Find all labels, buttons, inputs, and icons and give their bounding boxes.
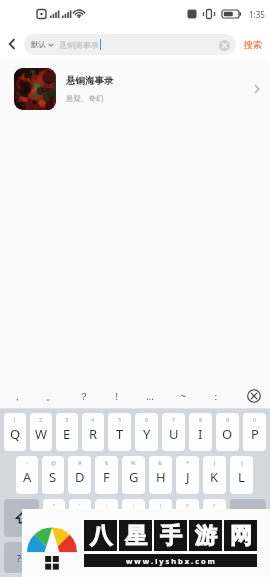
button[interactable]: 9 (216, 413, 239, 451)
staticText: " (53, 502, 56, 509)
staticText: 。 (46, 390, 56, 403)
button[interactable]: ~ (166, 383, 199, 409)
staticText: 。 (202, 552, 211, 563)
button[interactable]: " (43, 499, 65, 537)
button[interactable]: ， (43, 542, 66, 573)
staticText: 默认 (31, 40, 46, 49)
button[interactable]: 。 (195, 542, 218, 573)
staticText: J (186, 468, 190, 486)
staticText: 9 (226, 416, 230, 423)
staticText: M (209, 511, 221, 529)
staticText: @ (51, 459, 56, 466)
staticText: ， (12, 390, 22, 403)
staticText: G (129, 468, 139, 486)
staticText: - (26, 459, 28, 466)
button[interactable]: Key (230, 499, 266, 537)
staticText: % (131, 459, 136, 466)
staticText: I (198, 425, 203, 443)
button[interactable]: ： (199, 383, 232, 409)
staticText: 搜索 (236, 553, 252, 563)
button[interactable]: ？ (67, 383, 100, 409)
button[interactable]: 默认 (24, 34, 236, 55)
button[interactable]: 3 (56, 413, 78, 451)
staticText: T (116, 425, 124, 443)
staticText: ！ (112, 390, 122, 403)
staticText: C (102, 511, 111, 529)
staticText: E (63, 425, 71, 443)
staticText: A (23, 468, 32, 486)
staticText: ?1 (17, 552, 27, 564)
button[interactable]: ' (69, 499, 91, 537)
staticText: 4 (91, 416, 95, 423)
staticText: F (103, 468, 110, 486)
button[interactable]: ; (122, 499, 145, 537)
button[interactable] (105, 542, 191, 573)
staticText: Q (10, 425, 21, 443)
button[interactable]: 。 (34, 383, 67, 409)
staticText: 八 (90, 522, 112, 550)
button[interactable]: % (122, 456, 145, 494)
button[interactable]: 2 (30, 413, 52, 451)
button[interactable]: Search (222, 544, 266, 571)
button[interactable]: @ (42, 456, 64, 494)
button[interactable]: $ (95, 456, 118, 494)
staticText: 8 (199, 416, 203, 423)
staticText: U (169, 425, 179, 443)
staticText: / (213, 502, 216, 509)
staticText: 悬铜海事录 (66, 75, 114, 87)
staticText: P (251, 425, 259, 443)
staticText: w w w . l y s h b x . c o m (126, 556, 215, 566)
button[interactable]: * (176, 456, 199, 494)
button[interactable]: ) (230, 456, 253, 494)
staticText: 3 (65, 416, 69, 423)
button[interactable]: ( (203, 456, 226, 494)
staticText: 网 (230, 522, 252, 550)
staticText: * (186, 459, 190, 466)
button[interactable]: - (16, 456, 38, 494)
staticText: 5 (118, 416, 122, 423)
button[interactable]: 搜索 (236, 28, 270, 60)
staticText: ？ (79, 390, 89, 403)
staticText: ( (214, 459, 216, 466)
staticText: ! (160, 502, 162, 509)
staticText: D (75, 468, 85, 486)
staticText: 1:35 (249, 9, 265, 20)
button[interactable]: 5 (108, 413, 131, 451)
staticText: 星 (125, 522, 147, 550)
staticText: ) (241, 459, 243, 466)
staticText: : (106, 502, 108, 509)
button[interactable]: ! (149, 499, 172, 537)
staticText: B (156, 511, 165, 529)
button[interactable]: 1 (4, 413, 26, 451)
button[interactable]: … (133, 383, 166, 409)
staticText: 7 (172, 416, 176, 423)
button[interactable]: ， (0, 383, 34, 409)
button[interactable]: & (149, 456, 172, 494)
button[interactable]: Back (0, 28, 24, 60)
button[interactable]: / (203, 499, 226, 537)
staticText: Z (50, 511, 58, 529)
button[interactable]: 6 (135, 413, 158, 451)
staticText: 1 (13, 416, 17, 423)
button[interactable]: 8 (189, 413, 212, 451)
button[interactable]: Hide keyboard (241, 383, 267, 409)
button[interactable]: 中/英 (70, 542, 101, 573)
button[interactable]: ！ (100, 383, 133, 409)
button[interactable]: 0 (243, 413, 266, 451)
button[interactable]: 4 (82, 413, 104, 451)
button[interactable]: ?1 (4, 542, 39, 573)
staticText: 搜索 (244, 39, 262, 50)
button[interactable]: Key (4, 499, 39, 537)
staticText: & (158, 459, 163, 466)
staticText: # (78, 459, 82, 466)
button[interactable]: : (95, 499, 118, 537)
staticText: 悬铜海事录 (59, 40, 99, 50)
button[interactable]: ? (176, 499, 199, 537)
staticText: 游 (195, 522, 217, 550)
button[interactable]: # (68, 456, 91, 494)
staticText: ： (211, 390, 221, 403)
button[interactable]: 7 (162, 413, 185, 451)
button[interactable]: Clear (215, 36, 233, 54)
button[interactable]: 悬铜海事录 (0, 60, 270, 118)
